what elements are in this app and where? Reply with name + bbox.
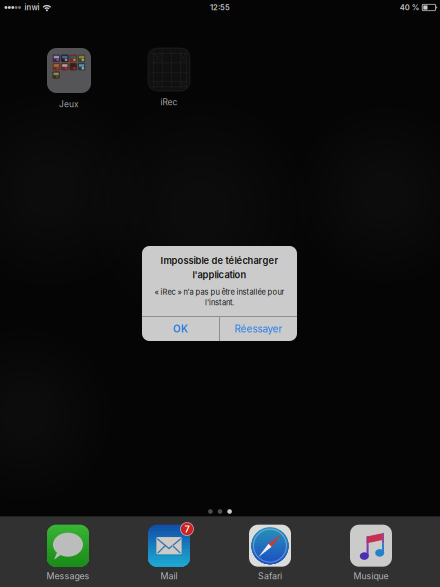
staticText: Mail [160, 571, 177, 581]
staticText: 7 [184, 523, 189, 535]
staticText: l'application [192, 269, 246, 280]
button[interactable]: Jeux [31, 48, 107, 112]
staticText: 40 % [400, 3, 420, 12]
staticText: inwi [24, 3, 39, 12]
staticText: l'instant. [205, 298, 234, 307]
button[interactable]: Musique [323, 522, 419, 584]
button[interactable]: Messages [20, 522, 116, 584]
staticText: OK [173, 323, 188, 335]
staticText: Impossible de télécharger [160, 255, 278, 266]
button[interactable]: OK [142, 317, 219, 341]
staticText: Safari [258, 571, 282, 581]
staticText: Jeux [59, 99, 79, 109]
button[interactable]: Mail [121, 522, 217, 584]
staticText: Musique [353, 571, 388, 581]
button[interactable]: iRec [131, 48, 207, 112]
button[interactable]: Safari [222, 522, 318, 584]
staticText: « iRec » n'a pas pu être installée pour [154, 287, 284, 296]
staticText: iRec [160, 97, 177, 107]
staticText: Messages [46, 571, 89, 581]
staticText: 12:55 [210, 3, 230, 12]
staticText: Réessayer [234, 323, 282, 335]
button[interactable]: Réessayer [220, 317, 297, 341]
